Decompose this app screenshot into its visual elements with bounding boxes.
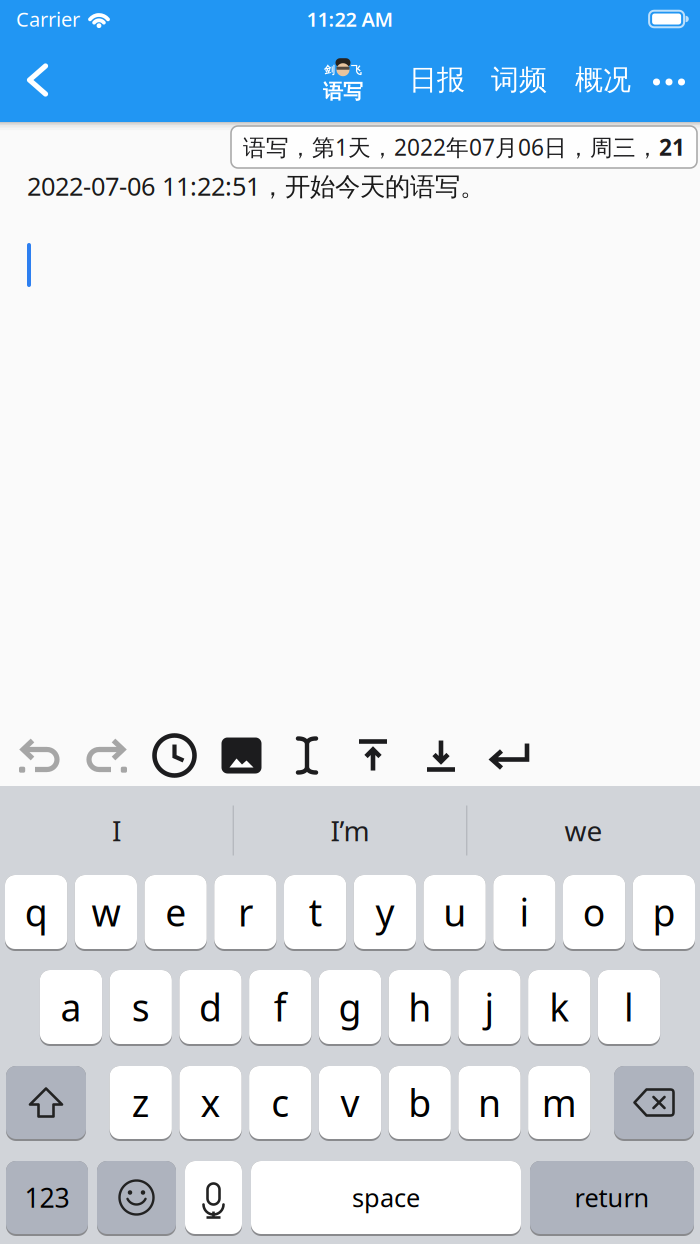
staticText: d <box>199 982 222 1032</box>
staticText: return <box>574 1181 649 1214</box>
staticText: 概况 <box>575 63 631 97</box>
staticText: q <box>25 887 48 937</box>
staticText: f <box>274 982 287 1032</box>
staticText: u <box>443 887 466 937</box>
staticText: x <box>200 1078 220 1127</box>
button[interactable]: Insert image <box>208 725 275 786</box>
button[interactable]: k <box>528 970 590 1046</box>
staticText: k <box>549 982 569 1032</box>
staticText: i <box>519 887 529 937</box>
staticText: b <box>408 1078 431 1127</box>
button[interactable]: b <box>389 1066 451 1141</box>
button[interactable]: l <box>598 970 660 1046</box>
button[interactable]: t <box>284 875 346 951</box>
staticText: space <box>352 1181 420 1214</box>
button[interactable]: 语写 <box>321 56 365 104</box>
button[interactable]: d <box>179 970 242 1046</box>
staticText: 语写 <box>323 79 363 104</box>
button[interactable]: space <box>251 1161 521 1236</box>
staticText: m <box>542 1078 577 1127</box>
staticText: y <box>375 887 394 937</box>
button[interactable]: w <box>75 875 137 951</box>
button[interactable]: Delete <box>614 1066 694 1141</box>
staticText: 语写，第1天，2022年07月06日，周三， <box>243 132 659 162</box>
staticText: r <box>238 887 253 937</box>
button[interactable]: n <box>458 1066 521 1141</box>
staticText: g <box>338 982 361 1032</box>
button[interactable]: 词频 <box>491 63 547 97</box>
button[interactable]: s <box>110 970 172 1046</box>
button[interactable]: we <box>467 786 699 875</box>
button[interactable]: Undo <box>5 725 73 786</box>
button[interactable]: Select text <box>275 725 339 786</box>
staticText: h <box>408 982 431 1032</box>
button[interactable]: return <box>530 1161 694 1236</box>
staticText: j <box>484 982 494 1032</box>
button[interactable]: o <box>563 875 625 951</box>
button[interactable]: r <box>214 875 276 951</box>
staticText: Carrier <box>16 6 80 32</box>
button[interactable]: Shift <box>6 1066 86 1141</box>
button[interactable]: x <box>179 1066 242 1141</box>
button[interactable]: More <box>653 76 700 83</box>
staticText: 飞 <box>351 64 362 77</box>
staticText: I’m <box>330 812 369 849</box>
button[interactable]: a <box>40 970 102 1046</box>
button[interactable]: Back <box>0 63 58 96</box>
staticText: p <box>652 887 675 937</box>
button[interactable]: v <box>319 1066 381 1141</box>
button[interactable]: j <box>458 970 521 1046</box>
button[interactable]: 概况 <box>575 63 631 97</box>
button[interactable]: c <box>249 1066 311 1141</box>
button[interactable]: Return <box>475 725 543 786</box>
button[interactable]: h <box>389 970 451 1046</box>
staticText: l <box>624 982 634 1032</box>
staticText: w <box>91 887 120 937</box>
button[interactable]: q <box>5 875 67 951</box>
button[interactable]: Redo <box>73 725 141 786</box>
staticText: we <box>564 812 602 849</box>
staticText: 21 <box>659 132 685 162</box>
staticText: 123 <box>24 1180 69 1215</box>
button[interactable]: g <box>319 970 381 1046</box>
button[interactable]: y <box>354 875 416 951</box>
staticText: c <box>271 1078 289 1127</box>
button[interactable]: e <box>144 875 207 951</box>
staticText: 词频 <box>491 63 547 97</box>
staticText: 日报 <box>409 63 465 97</box>
button[interactable]: m <box>528 1066 590 1141</box>
button[interactable]: u <box>423 875 486 951</box>
staticText: a <box>60 982 81 1032</box>
button[interactable]: Insert timestamp <box>141 725 208 786</box>
button[interactable]: Emoji <box>97 1161 176 1236</box>
button[interactable]: p <box>633 875 695 951</box>
button[interactable]: 日报 <box>409 63 465 97</box>
button[interactable]: Scroll to top <box>339 725 407 786</box>
staticText: n <box>478 1078 501 1127</box>
staticText: 剑 <box>324 64 335 77</box>
button[interactable]: I <box>1 786 233 875</box>
button[interactable]: z <box>110 1066 172 1141</box>
button[interactable]: 123 <box>6 1161 88 1236</box>
button[interactable]: Dictate <box>185 1161 242 1236</box>
staticText: t <box>309 887 322 937</box>
staticText: o <box>583 887 606 937</box>
staticText: z <box>132 1078 150 1127</box>
staticText: s <box>132 982 150 1032</box>
staticText: 11:22 AM <box>306 6 393 32</box>
button[interactable]: i <box>493 875 555 951</box>
button[interactable]: f <box>249 970 311 1046</box>
button[interactable]: Scroll to bottom <box>407 725 475 786</box>
button[interactable]: I’m <box>234 786 466 875</box>
staticText: v <box>340 1078 359 1127</box>
staticText: 2022-07-06 11:22:51，开始今天的语写。 <box>27 169 485 203</box>
staticText: e <box>165 887 186 937</box>
staticText: I <box>112 812 121 849</box>
